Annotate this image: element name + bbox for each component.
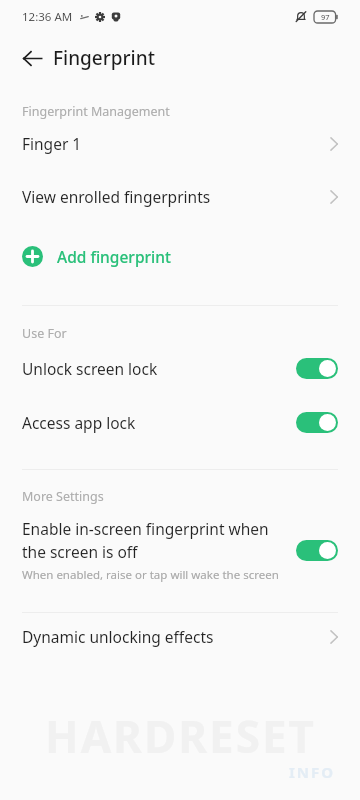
staticText: Unlock screen lock xyxy=(22,358,296,379)
staticText: View enrolled fingerprints xyxy=(22,186,330,207)
staticText: Access app lock xyxy=(22,412,296,433)
staticText: 12:36 AM xyxy=(22,9,73,25)
staticText: When enabled, raise or tap will wake the… xyxy=(22,567,279,583)
button[interactable]: Unlock screen lock xyxy=(0,342,360,395)
button[interactable]: Dynamic unlocking effects xyxy=(0,613,360,660)
staticText: Enable in-screen fingerprint when xyxy=(22,518,269,539)
staticText: More Settings xyxy=(22,488,104,505)
staticText: 97 xyxy=(321,12,330,22)
button[interactable]: Add fingerprint xyxy=(0,226,360,286)
staticText: Fingerprint Management xyxy=(22,103,170,120)
staticText: Finger 1 xyxy=(22,133,330,154)
staticText: Dynamic unlocking effects xyxy=(22,626,330,647)
button[interactable]: Access app lock xyxy=(0,395,360,449)
staticText: Add fingerprint xyxy=(57,246,171,267)
staticText: Use For xyxy=(22,325,67,342)
staticText: the screen is off xyxy=(22,541,138,562)
button[interactable]: Toggle xyxy=(296,412,338,433)
button[interactable]: Toggle xyxy=(296,358,338,379)
button[interactable]: View enrolled fingerprints xyxy=(0,167,360,226)
staticText: Fingerprint xyxy=(53,45,155,71)
button[interactable]: Back xyxy=(15,41,49,75)
staticText: HARDRESET xyxy=(45,706,316,766)
button[interactable]: Enable in-screen fingerprint when xyxy=(0,505,360,596)
button[interactable]: Finger 1 xyxy=(0,120,360,167)
staticText: INFO xyxy=(289,762,336,782)
button[interactable]: Toggle xyxy=(296,540,338,561)
